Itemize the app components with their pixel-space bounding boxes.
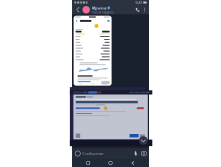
button[interactable]: Recent apps bbox=[82, 159, 94, 167]
button[interactable]: Home bbox=[104, 159, 116, 167]
button[interactable]: Сообщение bbox=[82, 148, 132, 158]
button[interactable]: Call bbox=[133, 5, 141, 15]
button[interactable]: Camera bbox=[140, 148, 148, 158]
button[interactable]: Back bbox=[73, 5, 82, 15]
button[interactable]: Emoji bbox=[73, 148, 82, 158]
staticText: Сообщение bbox=[82, 151, 103, 156]
staticText: был(а) недавно bbox=[92, 11, 114, 14]
button[interactable]: Scroll to bottom bbox=[139, 136, 148, 145]
button[interactable]: Attach bbox=[132, 148, 140, 158]
staticText: Ирина bbox=[92, 5, 106, 10]
button[interactable]: Back bbox=[127, 159, 139, 167]
button[interactable]: More options bbox=[141, 5, 147, 15]
staticText: 9:41 bbox=[135, 0, 142, 5]
